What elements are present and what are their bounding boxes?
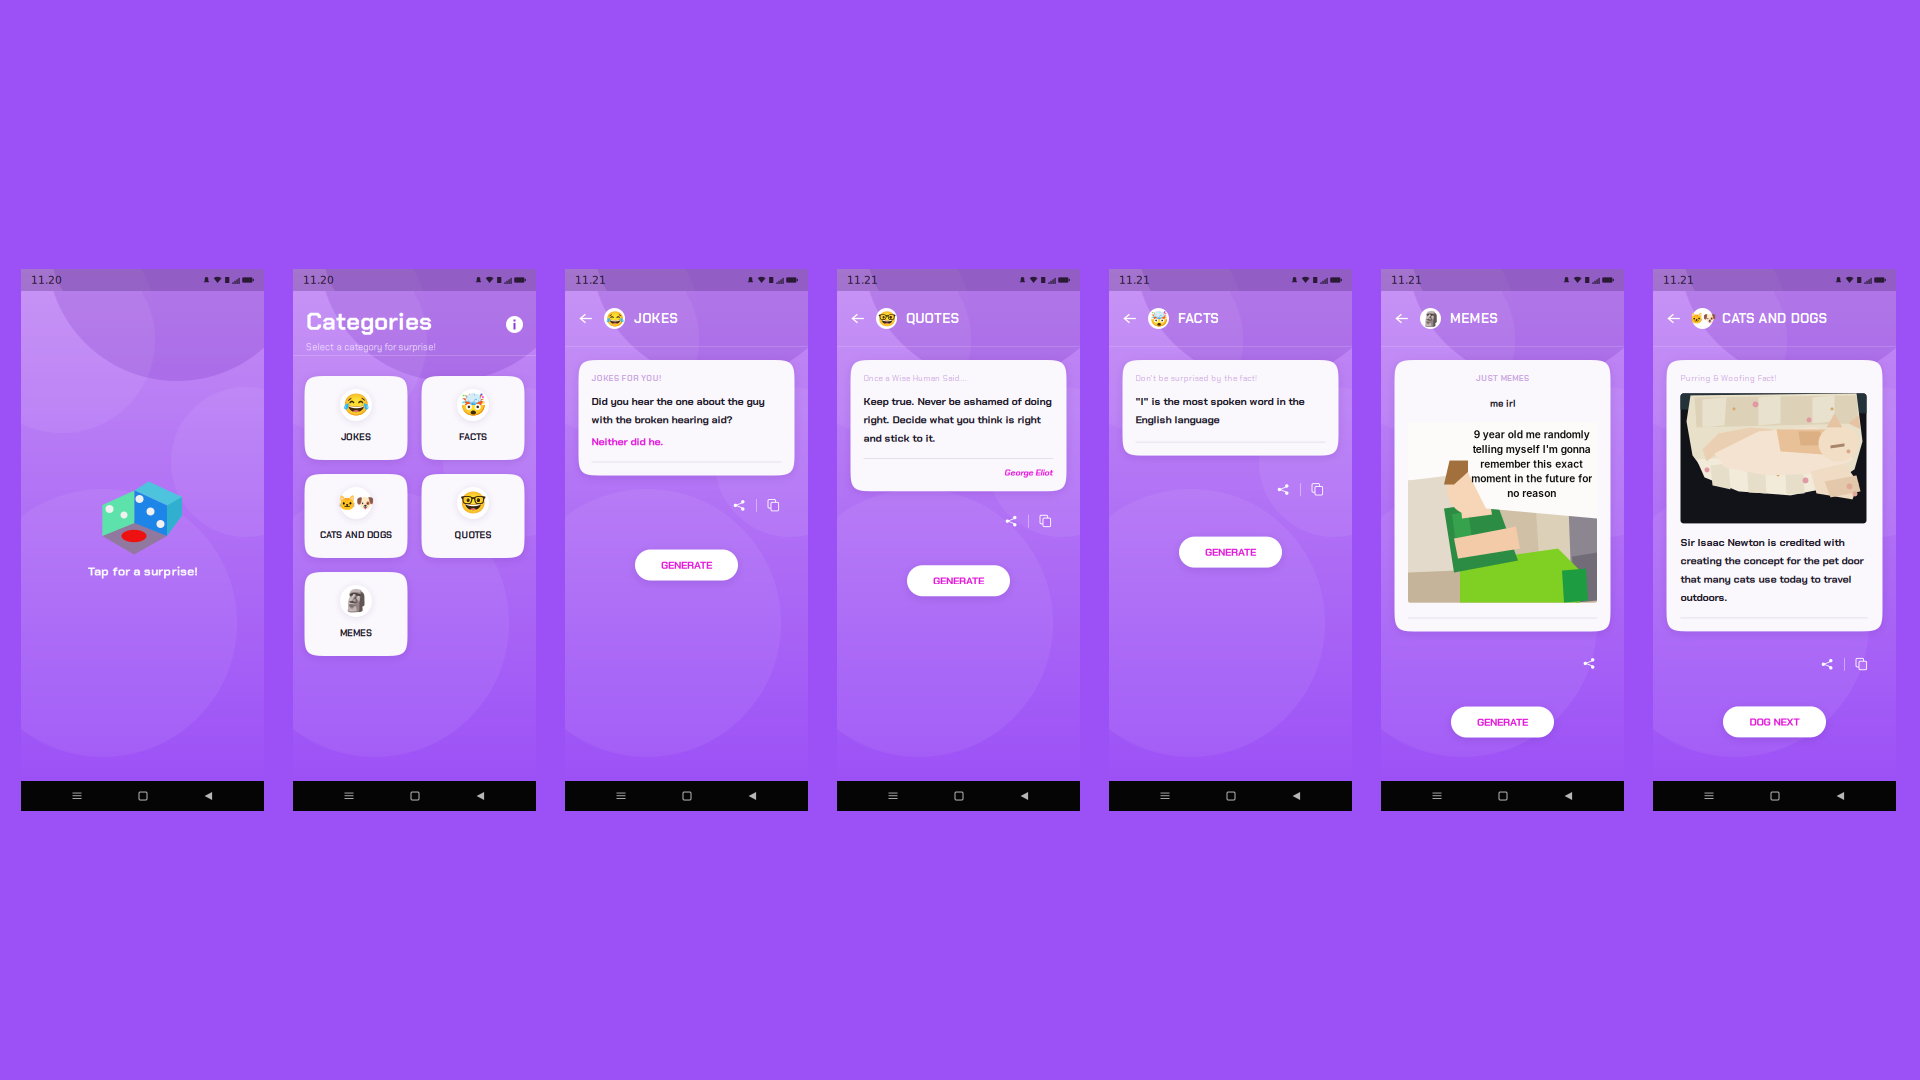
button[interactable]: Share [1001,511,1021,531]
button[interactable]: Recents [1154,786,1175,806]
staticText: Tap for a surprise! [88,563,197,579]
staticText: MEMES [1450,310,1497,327]
button[interactable]: Share [729,495,749,515]
staticText: Don't be surprised by the fact! [1135,373,1257,383]
staticText: 11.20 [303,274,334,286]
button[interactable]: DOG NEXT [1723,706,1826,737]
button[interactable]: Home [1221,786,1241,806]
button[interactable]: Home [1493,786,1513,806]
button[interactable]: Home [133,786,153,806]
staticText: 🤯 [1149,310,1167,327]
staticText: Did you hear the one about the guy with … [591,394,764,427]
staticText: GENERATE [1477,715,1528,729]
staticText: GENERATE [661,558,712,572]
staticText: 🗿 [342,588,369,613]
button[interactable]: Back [579,312,604,325]
button[interactable]: Back [1830,786,1850,806]
staticText: 😂 [605,310,623,327]
staticText: FACTS [459,431,487,443]
button[interactable]: Back [1014,786,1034,806]
button[interactable]: Back [1558,786,1578,806]
staticText: 🐱 [338,494,356,512]
staticText: QUOTES [906,310,958,327]
button[interactable]: Info [506,306,523,333]
button[interactable]: Recents [338,786,359,806]
button[interactable]: GENERATE [1179,537,1282,568]
button[interactable]: Home [1765,786,1785,806]
staticText: George Eliot [1004,467,1053,478]
staticText: GENERATE [933,574,984,588]
button[interactable]: Back [1667,312,1692,325]
button[interactable]: Home [405,786,425,806]
staticText: 🤓 [459,490,486,515]
button[interactable]: Back [1123,312,1148,325]
staticText: CATS AND DOGS [320,529,392,541]
staticText: 11.21 [1391,274,1422,286]
button[interactable]: Home [949,786,969,806]
staticText: QUOTES [454,529,491,541]
button[interactable]: 😂 [304,376,407,460]
button[interactable]: 🐱 [304,474,407,558]
button[interactable]: Copy [1308,480,1327,500]
button[interactable]: Recents [610,786,631,806]
staticText: 🐶 [1702,312,1715,325]
staticText: CATS AND DOGS [1722,310,1827,327]
button[interactable]: Back [470,786,490,806]
staticText: FACTS [1178,310,1218,327]
button[interactable]: Share [1273,480,1293,500]
button[interactable]: Copy [1036,511,1055,531]
staticText: Keep true. Never be ashamed of doing rig… [863,394,1051,445]
button[interactable]: Recents [66,786,87,806]
staticText: Once a Wise Human Said... [863,373,967,383]
staticText: MEMES [340,627,372,639]
button[interactable]: Back [851,312,876,325]
staticText: 🗿 [1421,310,1439,327]
button[interactable]: Back [1286,786,1306,806]
button[interactable]: 🗿 [304,572,407,656]
staticText: Select a category for surprise! [306,341,435,353]
staticText: 🐶 [356,494,374,512]
button[interactable]: Copy [764,495,783,515]
button[interactable]: GENERATE [907,565,1010,596]
staticText: me irl [1490,397,1515,409]
button[interactable]: Back [1395,312,1420,325]
staticText: Categories [306,306,432,337]
staticText: DOG NEXT [1749,715,1799,729]
button[interactable]: Copy [1852,654,1871,674]
staticText: 11.21 [847,274,878,286]
staticText: 🤯 [459,392,486,417]
staticText: 🤓 [877,310,895,327]
button[interactable]: Share [1579,653,1599,673]
staticText: JOKES [341,431,371,443]
button[interactable]: GENERATE [635,549,738,580]
button[interactable]: Back [742,786,762,806]
button[interactable]: Tap for a surprise [21,470,264,579]
button[interactable]: Recents [1698,786,1719,806]
staticText: Sir Isaac Newton is credited with creati… [1680,535,1863,604]
staticText: 11.21 [575,274,606,286]
staticText: 11.20 [31,274,62,286]
button[interactable]: 🤓 [421,474,524,558]
staticText: JOKES FOR YOU! [591,373,661,383]
staticText: Neither did he. [591,435,663,448]
staticText: JUST MEMES [1476,373,1529,383]
button[interactable]: GENERATE [1451,706,1554,737]
button[interactable]: Recents [1426,786,1447,806]
button[interactable]: Recents [882,786,903,806]
staticText: 11.21 [1119,274,1150,286]
button[interactable]: 🤯 [421,376,524,460]
staticText: 😂 [342,392,369,417]
staticText: Purring & Woofing Fact! [1680,373,1776,383]
staticText: 11.21 [1663,274,1694,286]
staticText: "I" is the most spoken word in the Engli… [1135,394,1304,427]
staticText: 9 year old me randomly telling myself I'… [1471,428,1592,499]
staticText: JOKES [634,310,677,327]
button[interactable]: Back [198,786,218,806]
staticText: GENERATE [1205,545,1256,559]
staticText: 🐱 [1689,312,1702,325]
button[interactable]: Share [1817,654,1837,674]
button[interactable]: Home [677,786,697,806]
